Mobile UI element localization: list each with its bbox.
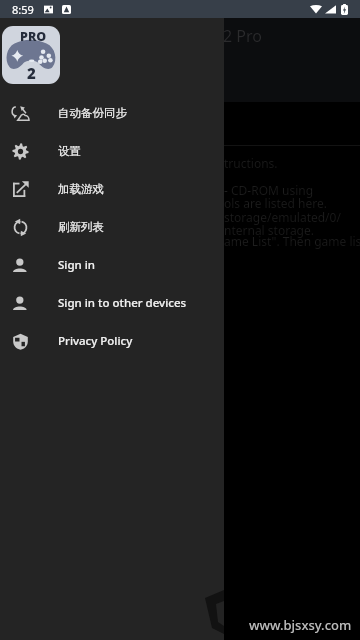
button[interactable]: Privacy Policy: [0, 322, 224, 360]
button[interactable]: Sign in: [0, 246, 224, 284]
staticText: www.bjsxsy.com: [249, 616, 352, 634]
staticText: 8:59: [12, 2, 34, 17]
staticText: PRO: [20, 28, 47, 45]
button[interactable]: Sign in to other devices: [0, 284, 224, 322]
staticText: 设置: [58, 144, 81, 158]
staticText: Privacy Policy: [58, 333, 133, 349]
staticText: Sign in to other devices: [58, 295, 187, 311]
staticText: ols are listed here.: [224, 195, 327, 211]
staticText: nternal storage.: [224, 222, 314, 238]
staticText: storage/emulated/0/: [224, 209, 341, 225]
staticText: 加载游戏: [58, 182, 104, 196]
staticText: 2 Pro: [223, 25, 262, 47]
staticText: tructions.: [224, 155, 278, 171]
staticText: 刷新列表: [58, 220, 104, 234]
staticText: 2: [27, 63, 36, 83]
staticText: - CD-ROM using: [224, 182, 314, 198]
staticText: Sign in: [58, 257, 96, 273]
staticText: 自动备份同步: [58, 106, 127, 120]
button[interactable]: 加载游戏: [0, 170, 224, 208]
staticText: ame List". Then game list: [224, 233, 360, 249]
button[interactable]: 设置: [0, 132, 224, 170]
button[interactable]: 自动备份同步: [0, 94, 224, 132]
button[interactable]: 刷新列表: [0, 208, 224, 246]
